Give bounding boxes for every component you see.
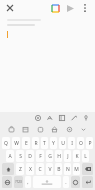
button[interactable]: , <box>25 176 31 188</box>
button[interactable]: Settings <box>34 114 42 122</box>
button[interactable]: Send <box>64 2 76 14</box>
button[interactable]: I <box>68 137 75 149</box>
button[interactable]: F <box>36 150 44 162</box>
staticText: N <box>66 166 70 173</box>
staticText: W <box>14 140 19 147</box>
button[interactable] <box>5 16 90 112</box>
staticText: ?123 <box>15 180 22 184</box>
staticText: , <box>27 179 29 186</box>
staticText: V <box>48 166 52 173</box>
button[interactable]: G <box>46 150 53 162</box>
staticText: . <box>65 179 67 186</box>
button[interactable]: Z <box>16 163 24 175</box>
staticText: E <box>25 140 28 147</box>
staticText: Y <box>52 140 55 147</box>
staticText: Z <box>19 166 22 173</box>
button[interactable]: Voice input <box>82 114 90 122</box>
button[interactable]: B <box>55 163 62 175</box>
button[interactable]: Shift <box>2 163 14 175</box>
staticText: J <box>67 153 69 160</box>
button[interactable]: R <box>32 137 39 149</box>
button[interactable]: N <box>64 163 71 175</box>
staticText: Q <box>4 140 8 147</box>
button[interactable]: Close <box>4 2 16 14</box>
staticText: T <box>43 140 46 147</box>
staticText: C <box>38 166 42 173</box>
button[interactable]: D <box>26 150 34 162</box>
button[interactable]: Emoji <box>71 176 80 188</box>
button[interactable]: Y <box>50 137 57 149</box>
button[interactable]: M <box>73 163 80 175</box>
button[interactable]: C <box>36 163 44 175</box>
button[interactable]: J <box>64 150 71 162</box>
button[interactable]: Switch language <box>2 176 12 188</box>
button[interactable]: W <box>12 137 20 149</box>
staticText: A <box>8 153 12 160</box>
button[interactable]: ?123 <box>14 176 23 188</box>
button[interactable]: Emoji category <box>35 124 46 135</box>
button[interactable]: P <box>86 137 93 149</box>
button[interactable]: Expand <box>78 124 89 135</box>
button[interactable]: K <box>73 150 80 162</box>
staticText: G <box>48 153 52 160</box>
button[interactable]: Backspace <box>82 163 93 175</box>
staticText: D <box>28 153 32 160</box>
button[interactable]: S <box>16 150 24 162</box>
button[interactable]: V <box>46 163 53 175</box>
staticText: U <box>61 140 65 147</box>
button[interactable]: Emoji category <box>64 124 75 135</box>
staticText: R <box>34 140 38 147</box>
button[interactable]: H <box>55 150 62 162</box>
staticText: B <box>57 166 61 173</box>
button[interactable]: Enter <box>82 176 93 188</box>
button[interactable]: Stickers <box>58 114 66 122</box>
staticText: H <box>57 153 61 160</box>
button[interactable]: T <box>41 137 48 149</box>
button[interactable]: U <box>59 137 66 149</box>
button[interactable]: Emoji category <box>49 124 60 135</box>
staticText: P <box>88 140 92 147</box>
staticText: S <box>19 153 22 160</box>
button[interactable]: Handwriting <box>70 114 78 122</box>
button[interactable]: Q <box>2 137 10 149</box>
button[interactable]: Translate <box>46 114 54 122</box>
staticText: M <box>74 166 79 173</box>
staticText: F <box>39 153 42 160</box>
button[interactable]: Space <box>33 176 61 188</box>
button[interactable]: O <box>77 137 84 149</box>
button[interactable]: A <box>6 150 14 162</box>
button[interactable]: E <box>22 137 30 149</box>
staticText: X <box>29 166 32 173</box>
button[interactable]: L <box>82 150 89 162</box>
staticText: I <box>71 140 73 147</box>
button[interactable]: More options <box>79 2 91 14</box>
button[interactable]: Emoji category <box>20 124 31 135</box>
button[interactable]: X <box>26 163 34 175</box>
staticText: K <box>75 153 79 160</box>
staticText: L <box>84 153 87 160</box>
staticText: O <box>79 140 83 147</box>
button[interactable]: Recent emoji <box>6 124 17 135</box>
button[interactable]: . <box>63 176 69 188</box>
button[interactable]: Smart compose <box>49 2 61 14</box>
